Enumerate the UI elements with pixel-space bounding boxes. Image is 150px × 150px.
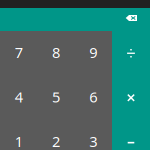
button[interactable]: Delete (120, 11, 150, 28)
button[interactable]: Divide (112, 31, 150, 75)
staticText: 8 (52, 42, 60, 62)
staticText: 2 (52, 131, 60, 150)
button[interactable]: 9 (75, 31, 112, 75)
staticText: 4 (15, 87, 23, 106)
staticText: 7 (15, 42, 23, 62)
button[interactable]: Minus (112, 120, 150, 150)
button[interactable]: 7 (0, 31, 37, 75)
button[interactable]: 3 (75, 120, 112, 150)
button[interactable]: 1 (0, 120, 37, 150)
button[interactable]: 8 (37, 31, 75, 75)
button[interactable]: 5 (37, 75, 75, 120)
staticText: 9 (89, 42, 97, 62)
button[interactable]: 2 (37, 120, 75, 150)
staticText: 1 (15, 131, 23, 150)
staticText: 6 (89, 87, 97, 106)
staticText: 5 (52, 87, 60, 106)
button[interactable]: 4 (0, 75, 37, 120)
button[interactable]: 6 (75, 75, 112, 120)
staticText: 3 (89, 131, 97, 150)
button[interactable]: Multiply (112, 75, 150, 120)
